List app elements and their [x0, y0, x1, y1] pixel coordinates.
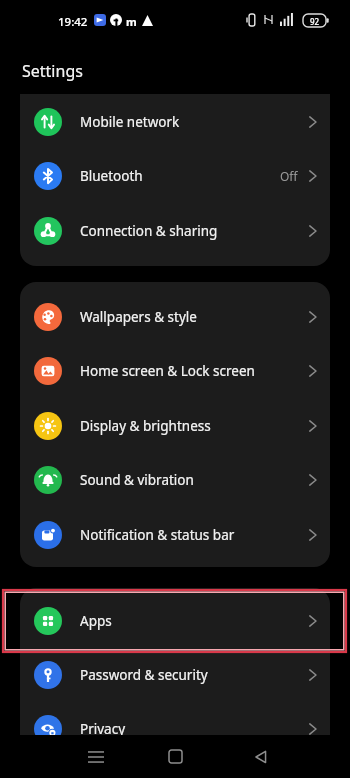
staticText: 92 — [310, 16, 320, 27]
staticText: Notification & status bar — [80, 526, 308, 544]
staticText: Connection & sharing — [80, 222, 308, 240]
staticText: Off — [280, 168, 298, 184]
staticText: Settings — [22, 60, 83, 82]
button[interactable]: Home — [155, 735, 195, 778]
staticText: Privacy — [80, 720, 308, 735]
staticText: Sound & vibration — [80, 471, 308, 489]
button[interactable]: Bluetooth — [20, 149, 330, 203]
button[interactable]: Privacy — [20, 702, 330, 735]
staticText: Mobile network — [80, 113, 308, 131]
button[interactable]: Connection & sharing — [20, 204, 330, 258]
button[interactable]: Notification & status bar — [20, 508, 330, 562]
button[interactable]: Home screen & Lock screen — [20, 344, 330, 398]
button[interactable]: Recent apps — [76, 735, 116, 778]
button[interactable]: Wallpapers & style — [20, 290, 330, 344]
button[interactable]: Mobile network — [20, 95, 330, 149]
staticText: Wallpapers & style — [80, 308, 308, 326]
staticText: Home screen & Lock screen — [80, 362, 308, 380]
button[interactable]: Display & brightness — [20, 399, 330, 453]
button[interactable]: Password & security — [20, 648, 330, 702]
button[interactable]: Apps — [20, 594, 330, 648]
button[interactable]: Back — [241, 735, 281, 778]
staticText: m — [126, 14, 137, 29]
button[interactable]: Sound & vibration — [20, 453, 330, 507]
staticText: Password & security — [80, 666, 308, 684]
staticText: Apps — [80, 612, 308, 630]
staticText: 19:42 — [58, 14, 88, 30]
staticText: Bluetooth — [80, 167, 280, 185]
staticText: Display & brightness — [80, 417, 308, 435]
